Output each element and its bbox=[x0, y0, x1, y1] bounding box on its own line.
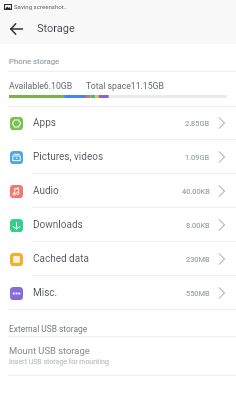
button[interactable]: Pictures, videos bbox=[0, 140, 236, 174]
staticText: Cached data bbox=[33, 253, 89, 265]
staticText: Phone storage bbox=[9, 57, 60, 66]
staticText: Mount USB storage bbox=[9, 345, 90, 356]
button[interactable]: Apps bbox=[0, 106, 236, 140]
staticText: 1.09GB bbox=[185, 153, 210, 162]
staticText: Storage bbox=[37, 22, 75, 35]
staticText: External USB storage bbox=[9, 324, 88, 334]
staticText: Misc. bbox=[33, 287, 58, 299]
staticText: Saving screenshot.. bbox=[14, 3, 67, 10]
staticText: 230MB bbox=[186, 255, 210, 264]
staticText: Downloads bbox=[33, 219, 83, 231]
staticText: 40.00KB bbox=[182, 187, 210, 196]
staticText: Audio bbox=[33, 185, 59, 197]
button[interactable]: Mount USB storage bbox=[0, 336, 236, 375]
staticText: Available6.10GB bbox=[9, 81, 73, 91]
staticText: 550MB bbox=[186, 289, 210, 298]
staticText: Insert USB storage for mounting bbox=[9, 358, 109, 366]
button[interactable]: Misc. bbox=[0, 276, 236, 310]
button[interactable]: Downloads bbox=[0, 208, 236, 242]
staticText: Total space11.15GB bbox=[86, 81, 164, 91]
staticText: 2.85GB bbox=[185, 119, 210, 128]
button[interactable]: Cached data bbox=[0, 242, 236, 276]
button[interactable]: Audio bbox=[0, 174, 236, 208]
staticText: Pictures, videos bbox=[33, 151, 104, 163]
staticText: Apps bbox=[33, 117, 56, 129]
staticText: 8.00KB bbox=[186, 221, 210, 230]
button[interactable]: Back bbox=[0, 13, 31, 44]
